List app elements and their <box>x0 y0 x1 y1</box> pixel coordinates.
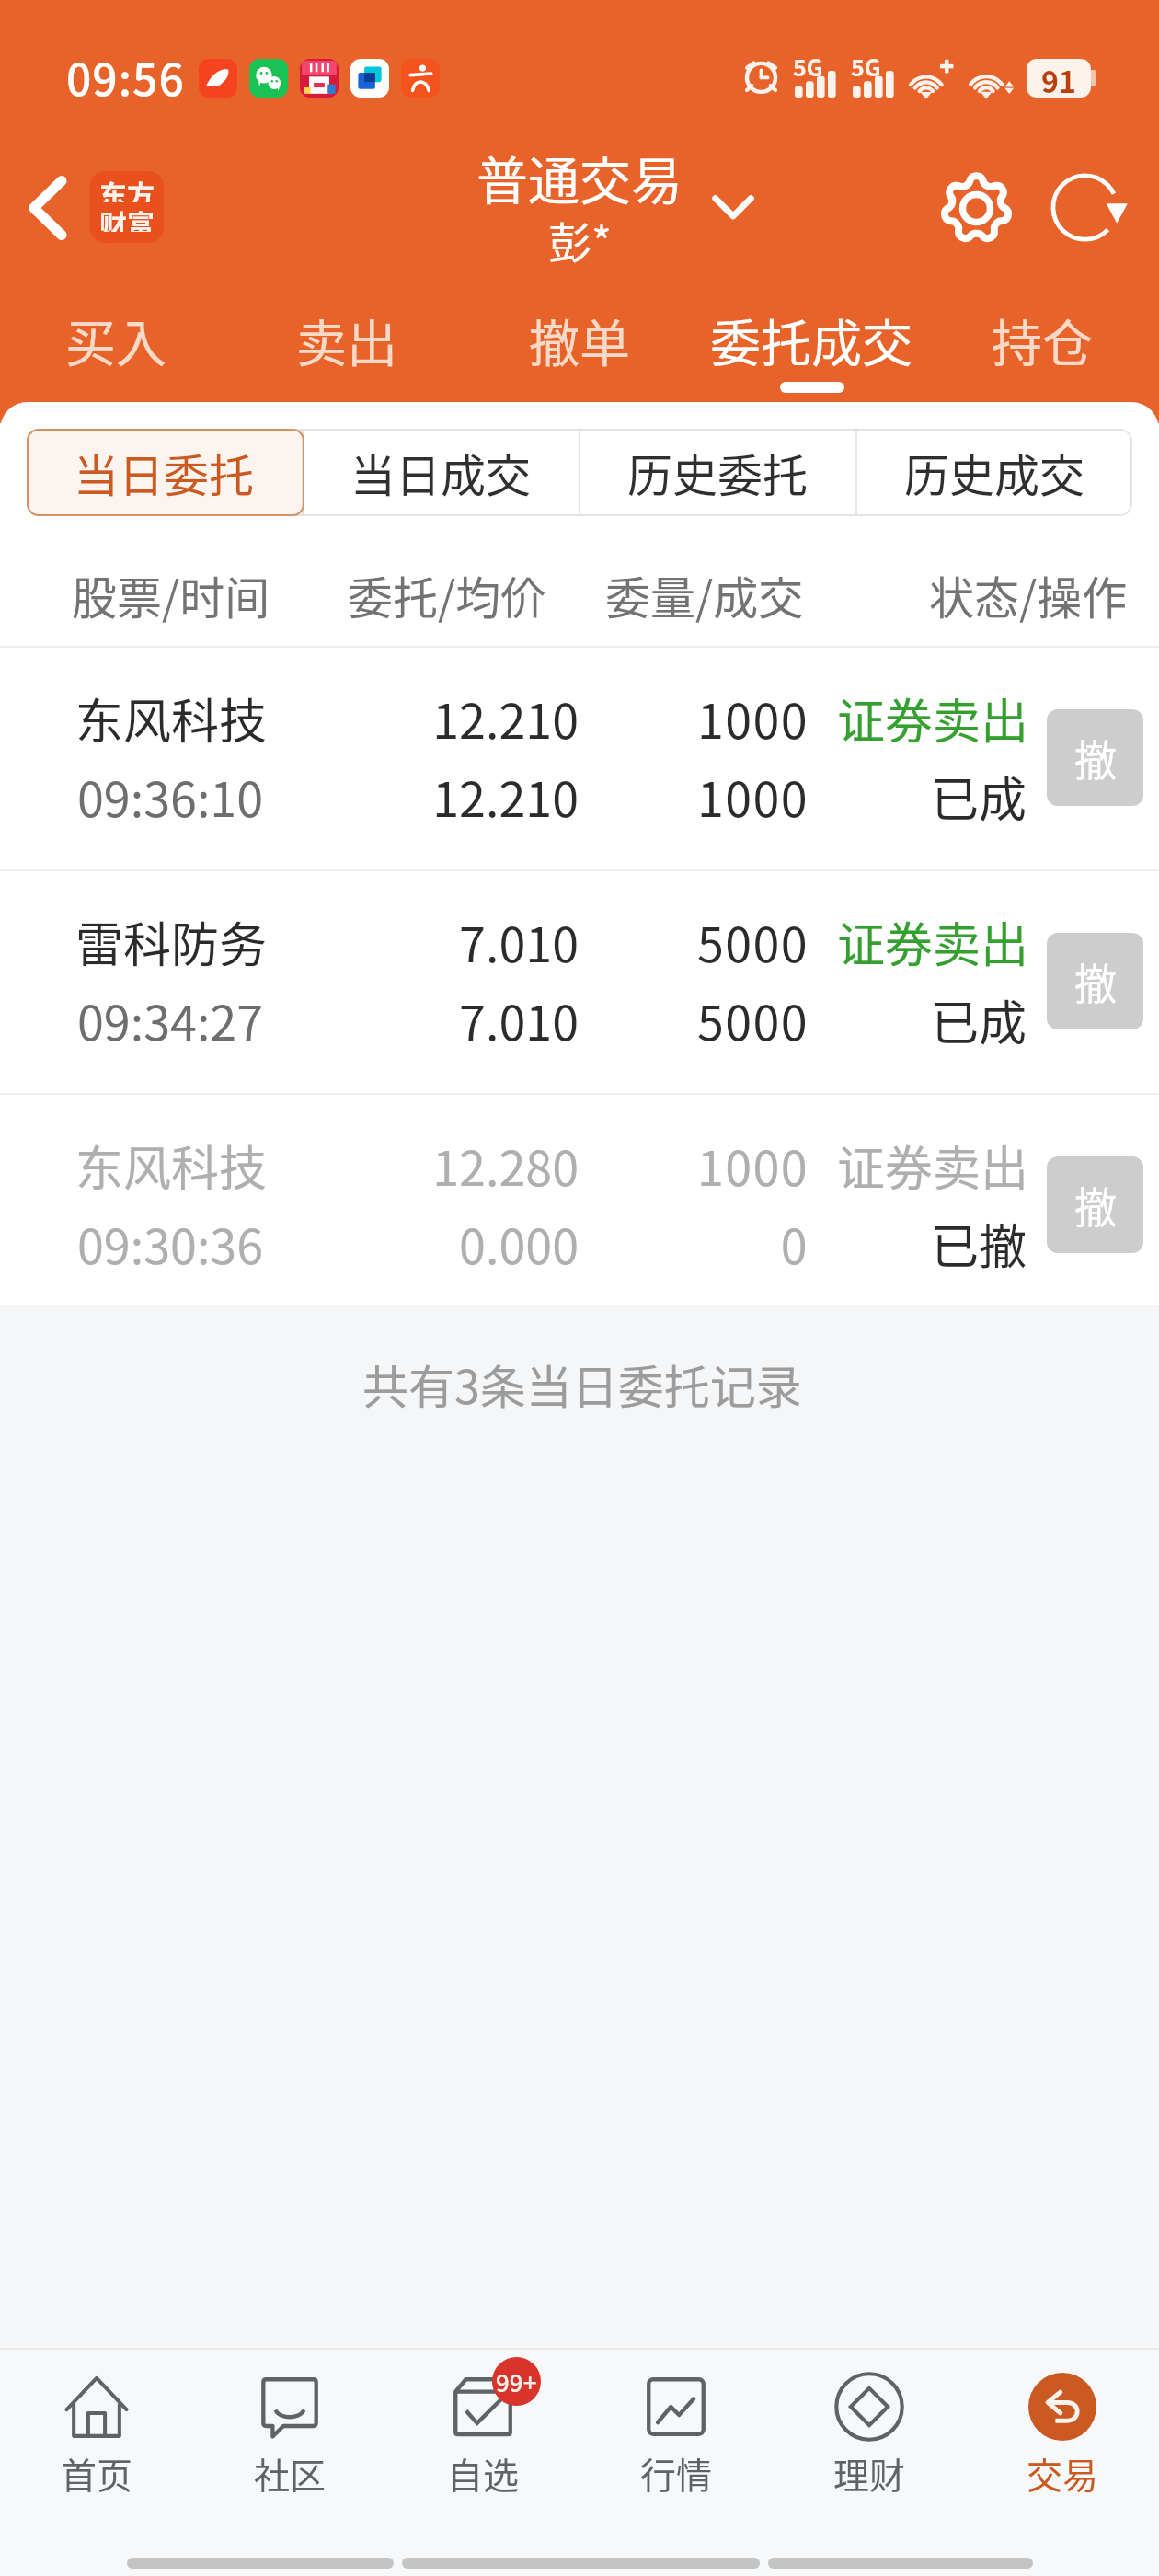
button[interactable]: 当日委托 <box>27 429 302 516</box>
button[interactable]: 卖出 <box>273 303 420 406</box>
staticText: 彭* <box>548 208 612 270</box>
button[interactable]: 持仓 <box>969 303 1116 406</box>
button[interactable]: Refresh <box>1049 167 1128 247</box>
staticText: 1000 <box>597 684 809 753</box>
staticText: 历史委托 <box>627 440 809 505</box>
staticText: 普通交易 <box>476 140 683 214</box>
staticText: 证券卖出 <box>837 1131 1029 1200</box>
staticText: 状态/操作 <box>929 562 1128 627</box>
staticText: 已成 <box>837 985 1027 1054</box>
staticText: 1000 <box>597 762 809 831</box>
staticText: 99+ <box>496 2364 537 2399</box>
button[interactable]: 理财 <box>773 2350 966 2524</box>
staticText: 12.210 <box>367 684 579 753</box>
staticText: 5000 <box>597 907 809 976</box>
staticText: 东风科技 <box>75 1131 268 1200</box>
button[interactable]: 历史委托 <box>580 429 855 516</box>
staticText: 5G <box>851 50 881 83</box>
staticText: 行情 <box>640 2447 713 2499</box>
staticText: 已撤 <box>837 1209 1027 1278</box>
button[interactable]: 99+ <box>386 2350 579 2524</box>
button[interactable]: 当日成交 <box>304 429 579 516</box>
staticText: 已成 <box>837 762 1027 831</box>
button[interactable]: Cancel order <box>1047 709 1143 806</box>
staticText: 1000 <box>597 1131 809 1200</box>
button[interactable]: Settings <box>936 168 1016 247</box>
button[interactable]: Cancel order <box>1047 933 1143 1029</box>
staticText: 撤 <box>1074 1174 1117 1236</box>
staticText: 12.210 <box>367 762 579 831</box>
staticText: 社区 <box>254 2447 327 2499</box>
staticText: 卖出 <box>296 303 398 376</box>
staticText: 09:56 <box>66 44 185 109</box>
button[interactable]: 交易 <box>966 2350 1159 2524</box>
staticText: 证券卖出 <box>837 907 1029 976</box>
button[interactable]: Cancel order <box>1047 1156 1143 1253</box>
button[interactable]: 撤单 <box>506 303 653 406</box>
staticText: 东方 <box>99 173 155 202</box>
button[interactable]: 首页 <box>0 2350 193 2524</box>
staticText: 09:34:27 <box>77 985 264 1054</box>
staticText: 持仓 <box>992 303 1094 376</box>
staticText: 91 <box>1041 59 1076 98</box>
staticText: 交易 <box>1027 2447 1099 2499</box>
staticText: 雷科防务 <box>75 907 268 976</box>
staticText: 理财 <box>833 2447 906 2499</box>
staticText: 股票/时间 <box>72 562 270 627</box>
button[interactable] <box>0 869 1159 1093</box>
staticText: 历史成交 <box>904 440 1085 505</box>
staticText: 09:36:10 <box>77 762 264 831</box>
staticText: 7.010 <box>367 907 579 976</box>
staticText: 买入 <box>65 303 167 376</box>
staticText: 证券卖出 <box>837 684 1029 753</box>
staticText: 7.010 <box>367 985 579 1054</box>
staticText: 撤单 <box>529 303 631 376</box>
staticText: 委量/成交 <box>605 562 804 627</box>
button[interactable] <box>0 646 1159 869</box>
staticText: 共有3条当日委托记录 <box>362 1351 802 1417</box>
staticText: 撤 <box>1074 727 1117 788</box>
staticText: 09:30:36 <box>77 1209 264 1278</box>
button[interactable]: 行情 <box>579 2350 773 2524</box>
button[interactable]: 历史成交 <box>857 429 1132 516</box>
button[interactable]: 买入 <box>42 303 189 406</box>
button[interactable]: Back <box>8 169 86 247</box>
staticText: 5G <box>793 50 823 83</box>
staticText: 5000 <box>597 985 809 1054</box>
staticText: 首页 <box>61 2447 133 2499</box>
button[interactable]: East Money <box>90 171 164 243</box>
staticText: 12.280 <box>367 1131 579 1200</box>
button[interactable] <box>0 1093 1159 1317</box>
staticText: 自选 <box>447 2447 520 2499</box>
staticText: 委托成交 <box>710 303 913 376</box>
button[interactable]: 委托成交 <box>696 303 926 406</box>
staticText: 撤 <box>1074 950 1117 1012</box>
staticText: 财富 <box>99 202 155 232</box>
staticText: 0.000 <box>367 1209 579 1278</box>
staticText: 当日委托 <box>74 440 255 505</box>
staticText: 当日成交 <box>350 440 532 505</box>
button[interactable]: 普通交易 <box>465 133 768 271</box>
button[interactable]: 社区 <box>193 2350 386 2524</box>
staticText: 东风科技 <box>75 684 268 753</box>
staticText: 0 <box>597 1209 809 1278</box>
staticText: 委托/均价 <box>348 562 546 627</box>
